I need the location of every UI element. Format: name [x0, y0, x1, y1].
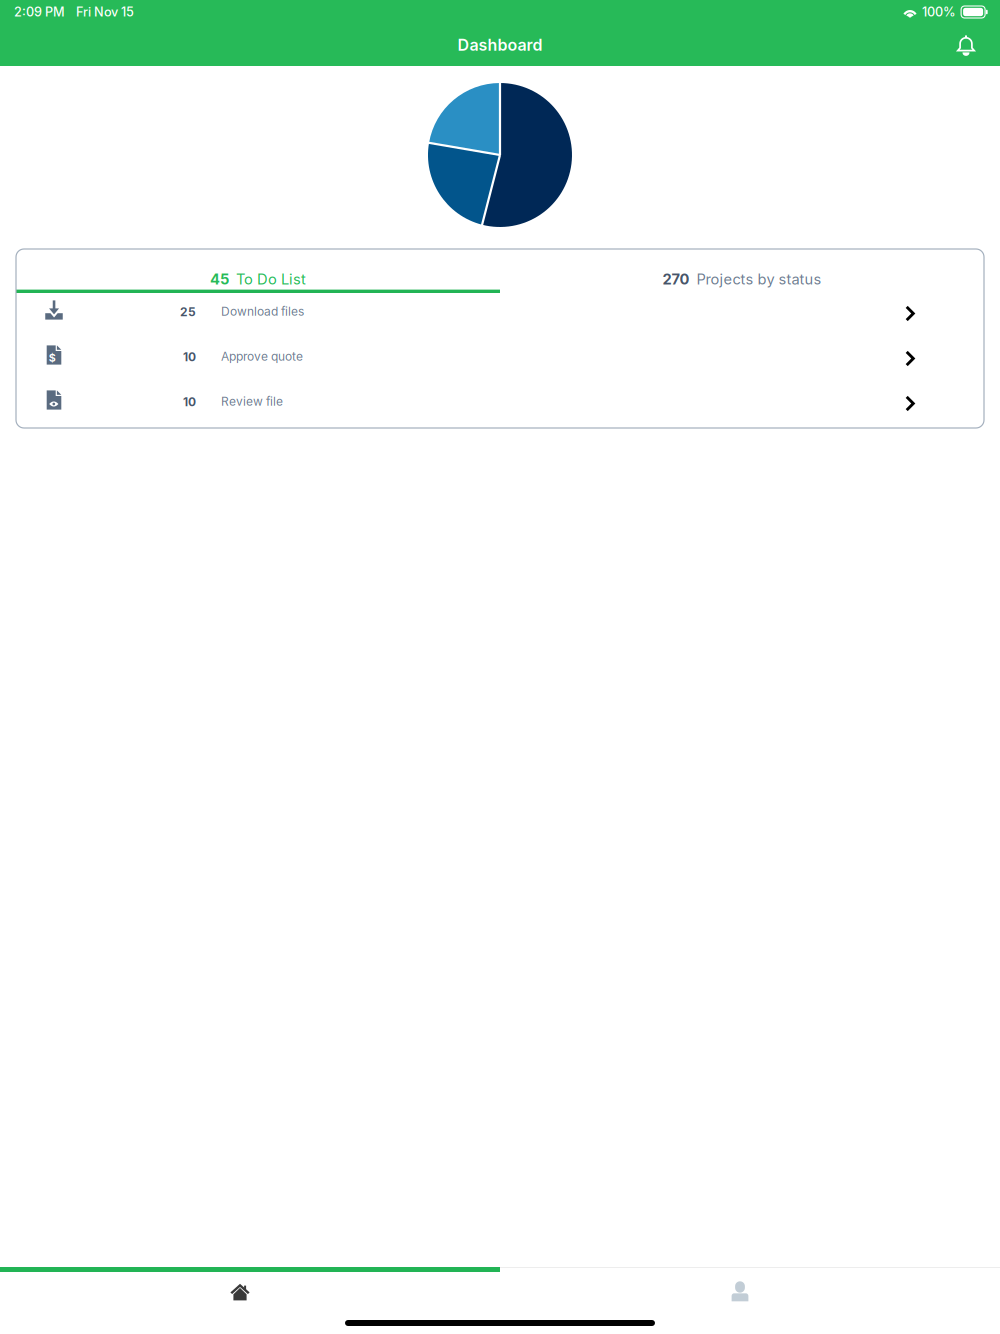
- button[interactable]: Profile: [500, 1272, 1000, 1314]
- staticText: 10: [183, 350, 196, 364]
- button[interactable]: 270: [500, 249, 984, 293]
- staticText: Approve quote: [221, 349, 303, 364]
- staticText: Download files: [221, 304, 304, 319]
- button[interactable]: Home: [0, 1272, 500, 1314]
- button[interactable]: 10: [16, 383, 984, 428]
- staticText: 2:09 PM: [14, 4, 65, 20]
- staticText: 10: [183, 395, 196, 409]
- staticText: Projects by status: [696, 270, 821, 288]
- staticText: 25: [180, 305, 196, 319]
- staticText: 45: [210, 270, 229, 288]
- staticText: To Do List: [236, 270, 306, 288]
- staticText: 100%: [922, 4, 956, 20]
- button[interactable]: 25: [16, 293, 984, 338]
- staticText: Fri Nov 15: [76, 4, 134, 20]
- staticText: Dashboard: [457, 35, 542, 55]
- staticText: $: [49, 351, 56, 364]
- staticText: Review file: [221, 394, 283, 409]
- button[interactable]: $: [16, 338, 984, 383]
- button[interactable]: 45: [16, 249, 500, 293]
- staticText: 270: [662, 270, 689, 288]
- button[interactable]: Notifications: [945, 24, 987, 66]
